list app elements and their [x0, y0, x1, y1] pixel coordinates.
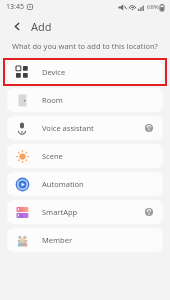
button[interactable]: Device: [7, 60, 163, 84]
staticText: Member: [42, 235, 72, 245]
staticText: Device: [42, 67, 66, 77]
staticText: Automation: [42, 179, 84, 189]
button[interactable]: Member: [7, 228, 163, 252]
button[interactable]: Help: [143, 122, 155, 134]
button[interactable]: Back: [9, 18, 25, 34]
staticText: What do you want to add to this location…: [12, 41, 158, 51]
button[interactable]: Automation: [7, 172, 163, 196]
staticText: 13:45: [6, 2, 24, 12]
staticText: 68%: [147, 3, 159, 11]
button[interactable]: Voice assistant: [7, 116, 163, 140]
staticText: SmartApp: [42, 207, 78, 217]
staticText: Room: [42, 95, 63, 105]
button[interactable]: SmartApp: [7, 200, 163, 224]
button[interactable]: Room: [7, 88, 163, 112]
staticText: Scene: [42, 151, 63, 161]
staticText: Voice assistant: [42, 123, 94, 133]
button[interactable]: Scene: [7, 144, 163, 168]
button[interactable]: Help: [143, 206, 155, 218]
staticText: Add: [31, 19, 52, 34]
